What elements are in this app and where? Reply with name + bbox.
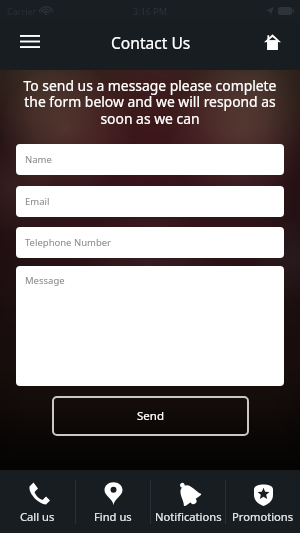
button[interactable]: Telephone Number	[16, 227, 284, 258]
staticText: Promotions	[232, 509, 294, 524]
button[interactable]: Promotions	[226, 470, 300, 533]
staticText: Carrier	[7, 5, 37, 17]
button[interactable]: Send	[52, 396, 249, 436]
button[interactable]: Notifications	[151, 470, 225, 533]
staticText: Email	[25, 195, 50, 208]
staticText: Send	[137, 408, 164, 424]
staticText: To send us a message please complete the…	[22, 76, 278, 128]
staticText: Name	[25, 153, 52, 166]
button[interactable]: Find us	[76, 470, 150, 533]
button[interactable]: Name	[16, 144, 284, 175]
staticText: Message	[25, 274, 65, 287]
button[interactable]: Message	[16, 266, 284, 386]
button[interactable]: Home	[255, 22, 295, 70]
staticText: Telephone Number	[25, 236, 112, 249]
button[interactable]: Menu	[8, 21, 52, 70]
staticText: Call us	[20, 509, 55, 524]
button[interactable]: Email	[16, 186, 284, 217]
staticText: Contact Us	[111, 32, 191, 53]
button[interactable]: Call us	[0, 470, 75, 533]
staticText: Notifications	[155, 509, 222, 524]
staticText: 3:16 PM	[133, 5, 167, 17]
staticText: Find us	[94, 509, 132, 524]
